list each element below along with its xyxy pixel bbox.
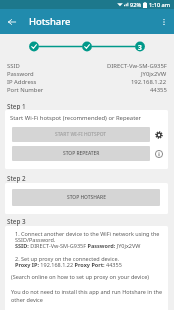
staticText: STOP REPEATER: [63, 150, 100, 157]
staticText: You do not need to install this app and …: [11, 288, 163, 304]
button[interactable]: STOP REPEATER: [12, 146, 150, 161]
staticText: DIRECT-Vw-SM-G935F: [107, 62, 167, 70]
staticText: Step 3: [7, 217, 26, 226]
staticText: JY0jx2VW: [141, 70, 167, 78]
staticText: 3: [138, 43, 142, 52]
button[interactable]: START WI-FI HOTSPOT: [12, 127, 150, 142]
button[interactable]: STOP HOTSHARE: [12, 189, 160, 206]
staticText: 44355: [150, 86, 167, 94]
button[interactable]: Repeater info: [150, 145, 167, 162]
staticText: 192.168.1.22: [131, 78, 167, 86]
staticText: SSID: [7, 62, 20, 70]
staticText: 1. Connect another device to the WiFi ne…: [15, 230, 163, 250]
staticText: Hotshare: [29, 15, 71, 28]
staticText: START WI-FI HOTSPOT: [55, 131, 107, 138]
staticText: STOP HOTSHARE: [67, 194, 106, 201]
staticText: IP Address: [7, 78, 37, 86]
staticText: 1:10 am: [149, 1, 171, 9]
button[interactable]: More options: [154, 12, 174, 32]
button[interactable]: Back: [0, 10, 23, 33]
staticText: Step 1: [7, 102, 26, 111]
staticText: Start Wi-Fi hotspot (recommended) or Rep…: [10, 114, 142, 122]
staticText: Password: [7, 70, 34, 78]
staticText: 92%: [130, 1, 142, 9]
staticText: Step 2: [7, 174, 26, 183]
staticText: 2. Set up proxy on the connected device.…: [15, 255, 163, 269]
staticText: Port Number: [7, 86, 44, 94]
button[interactable]: Hotspot settings: [150, 126, 167, 143]
staticText: (Search online on how to set up proxy on…: [11, 273, 149, 280]
